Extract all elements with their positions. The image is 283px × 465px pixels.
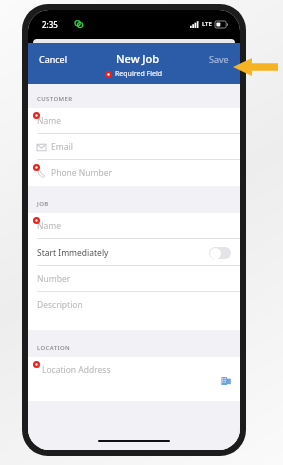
button[interactable]: Save — [206, 51, 232, 67]
staticText: Cancel — [39, 53, 68, 65]
button[interactable]: Email — [28, 134, 240, 160]
button[interactable]: Name — [28, 108, 240, 134]
other: Start Immediately toggle — [209, 247, 231, 259]
button[interactable]: Cancel — [36, 51, 71, 67]
staticText: Number — [37, 273, 71, 285]
button[interactable]: Pick company address — [221, 376, 231, 386]
staticText: Name — [37, 220, 61, 232]
staticText: New Job — [116, 51, 160, 66]
button[interactable]: Phone Number — [28, 160, 240, 186]
staticText: Start Immediately — [37, 247, 109, 259]
button[interactable]: Name — [28, 213, 240, 239]
staticText: Required Field — [115, 69, 163, 79]
staticText: LOCATION — [37, 344, 71, 352]
staticText: Description — [37, 299, 83, 311]
button[interactable]: Number — [28, 266, 240, 292]
button[interactable]: Description — [28, 292, 240, 330]
staticText: Save — [209, 53, 229, 65]
staticText: LTE — [202, 20, 212, 28]
staticText: Email — [51, 141, 73, 153]
button[interactable]: Start Immediately — [28, 239, 240, 266]
staticText: 2:35 — [42, 19, 58, 30]
button[interactable]: Location Address — [28, 357, 240, 401]
staticText: Location Address — [42, 364, 111, 376]
staticText: Name — [37, 115, 61, 127]
staticText: CUSTOMER — [37, 95, 73, 103]
staticText: Phone Number — [51, 167, 112, 179]
staticText: JOB — [37, 200, 49, 208]
